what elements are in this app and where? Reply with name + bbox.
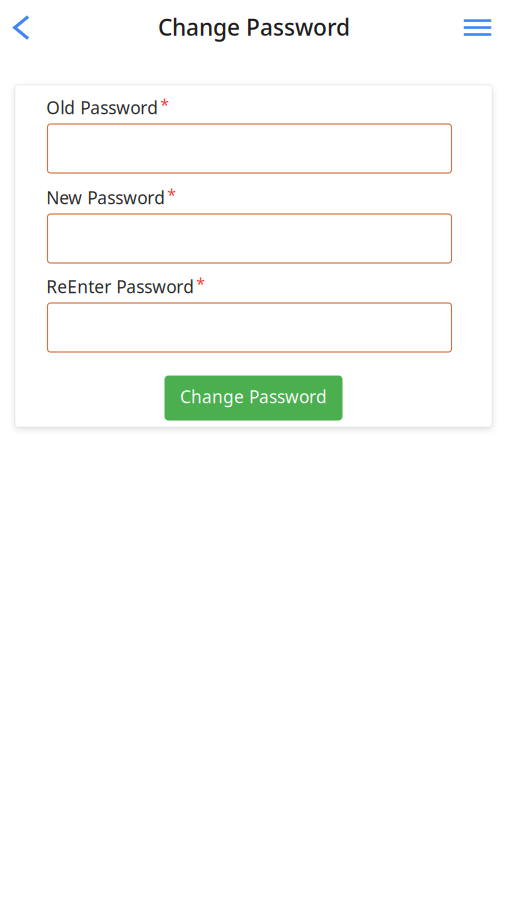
staticText: * [160,94,169,115]
staticText: * [196,273,205,294]
button[interactable]: Back [0,6,43,50]
button[interactable]: Change Password [164,375,342,420]
staticText: New Password [46,186,165,209]
button[interactable]: Old Password [47,124,451,173]
staticText: Change Password [180,385,327,408]
button[interactable]: New Password [47,214,451,263]
staticText: Change Password [158,12,350,42]
button[interactable]: ReEnter Password [47,303,451,352]
button[interactable]: Menu [455,5,499,49]
staticText: ReEnter Password [46,275,194,298]
staticText: Old Password [46,96,158,119]
staticText: * [167,184,176,205]
